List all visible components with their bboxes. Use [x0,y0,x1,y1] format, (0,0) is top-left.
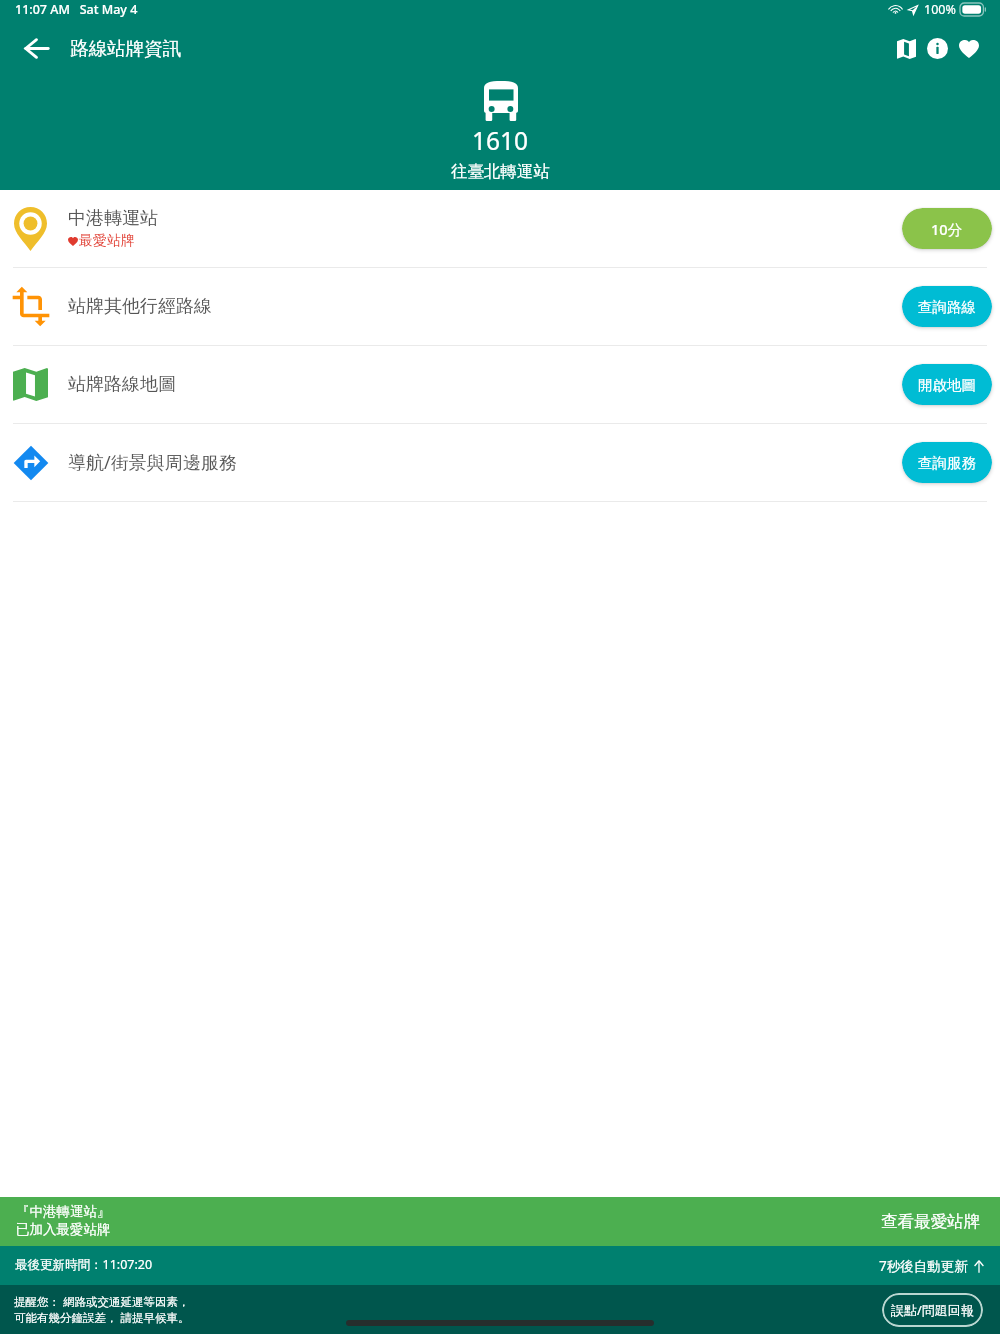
staticText: 站牌其他行經路線 [68,295,212,318]
staticText: 7秒後自動更新 [879,1257,968,1275]
staticText: 10分 [931,219,963,239]
button[interactable]: 站牌其他行經路線 [0,268,1000,345]
staticText: 最後更新時間：11:07:20 [15,1256,153,1273]
button[interactable]: 中港轉運站 [0,190,1000,267]
staticText: 100% [924,1,956,18]
button[interactable]: 『中港轉運站』 [0,1197,1000,1246]
staticText: 站牌路線地圖 [68,373,176,396]
button[interactable]: Map [891,25,922,72]
staticText: 1610 [472,124,529,157]
staticText: 最愛站牌 [79,232,135,250]
staticText: 查詢服務 [918,454,976,472]
button[interactable]: 誤點/問題回報 [882,1293,983,1327]
staticText: 提醒您： 網路或交通延遲等因素， [14,1294,190,1310]
button[interactable]: Favorite [953,25,984,72]
staticText: 導航/街景與周邊服務 [68,450,237,475]
button[interactable]: 查詢路線 [902,286,992,327]
staticText: 『中港轉運站』 [16,1203,111,1220]
staticText: 11:07 AM Sat May 4 [15,1,138,18]
button[interactable]: 查看最愛站牌 [861,1199,1000,1244]
button[interactable]: Info [922,25,953,72]
button[interactable]: Back [8,25,64,72]
button[interactable]: 10分 [902,208,992,249]
staticText: 開啟地圖 [918,376,976,394]
staticText: 查看最愛站牌 [881,1211,980,1232]
button[interactable]: 導航/街景與周邊服務 [0,424,1000,501]
staticText: 可能有幾分鐘誤差， 請提早候車。 [14,1310,190,1326]
staticText: 路線站牌資訊 [70,37,181,60]
button[interactable]: 7秒後自動更新 [879,1257,984,1275]
button[interactable]: 查詢服務 [902,442,992,483]
staticText: 誤點/問題回報 [891,1301,974,1319]
staticText: 中港轉運站 [68,207,158,230]
button[interactable]: 開啟地圖 [902,364,992,405]
staticText: 已加入最愛站牌 [16,1221,111,1238]
staticText: 查詢路線 [918,298,976,316]
button[interactable]: 站牌路線地圖 [0,346,1000,423]
staticText: 往臺北轉運站 [451,161,550,182]
